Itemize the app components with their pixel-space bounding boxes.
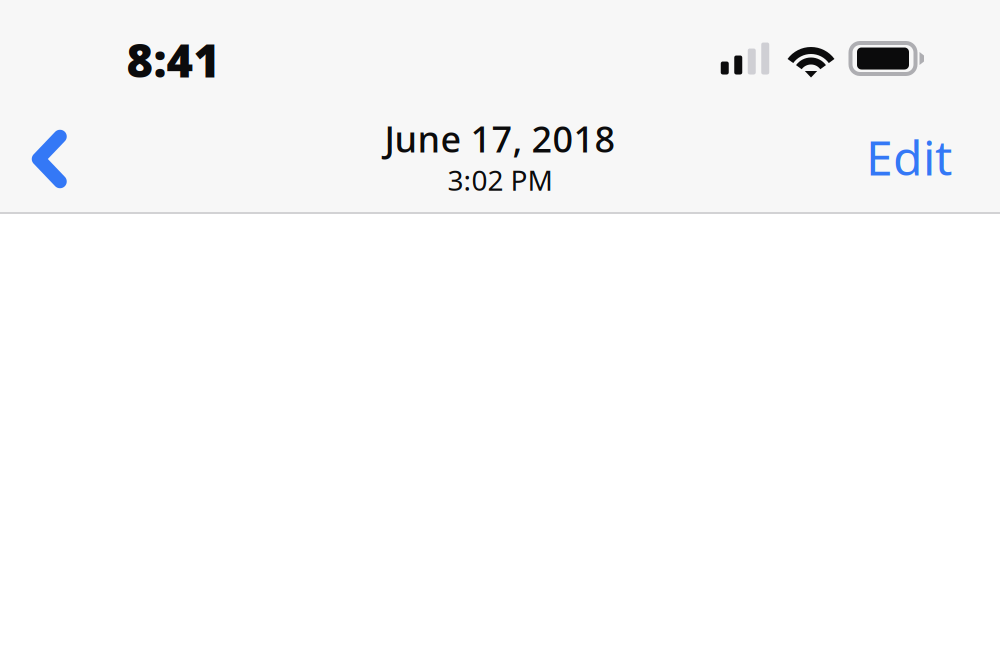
button[interactable]: Edit	[822, 109, 952, 205]
staticText: June 17, 2018	[384, 114, 615, 162]
staticText: Edit	[866, 125, 952, 189]
staticText: 3:02 PM	[447, 161, 552, 198]
button[interactable]: Back	[30, 111, 126, 207]
staticText: 8:41	[126, 30, 220, 90]
